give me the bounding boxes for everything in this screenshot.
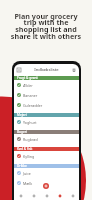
- button[interactable]: Æbler: [14, 80, 79, 90]
- staticText: Gulerødder: [23, 103, 43, 108]
- button[interactable]: Mælk: [14, 178, 79, 188]
- staticText: Yoghurt: [23, 120, 37, 125]
- button[interactable]: Profile: [72, 68, 76, 72]
- staticText: Bananer: [23, 93, 38, 98]
- button[interactable]: Kylling: [14, 151, 79, 161]
- button[interactable]: List: [17, 68, 21, 72]
- button[interactable]: Home: [14, 191, 27, 200]
- staticText: Kylling: [23, 154, 35, 159]
- button[interactable]: Juice: [14, 168, 79, 178]
- staticText: Indkøbsliste: [21, 67, 72, 73]
- staticText: Bageri: [17, 130, 27, 134]
- staticText: Frugt & grønt: [17, 76, 38, 80]
- staticText: Kød & fisk: [17, 147, 33, 151]
- button[interactable]: Lists: [27, 191, 40, 200]
- button[interactable]: Offers: [53, 191, 66, 200]
- button[interactable]: Profile: [66, 191, 79, 200]
- staticText: Mælk: [23, 181, 33, 186]
- button[interactable]: Yoghurt: [14, 117, 79, 127]
- button[interactable]: Rugbrød: [14, 134, 79, 144]
- staticText: Rugbrød: [23, 137, 38, 142]
- staticText: Mejeri: [17, 113, 27, 117]
- button[interactable]: Gulerødder: [14, 100, 79, 110]
- staticText: Drikke: [17, 164, 27, 168]
- button[interactable]: Search: [40, 191, 53, 200]
- staticText: Juice: [23, 171, 31, 176]
- button[interactable]: Add item: [43, 183, 49, 189]
- button[interactable]: Bananer: [14, 90, 79, 100]
- staticText: Plan your grocery trip with the shopping…: [0, 11, 92, 41]
- staticText: Æbler: [23, 83, 33, 88]
